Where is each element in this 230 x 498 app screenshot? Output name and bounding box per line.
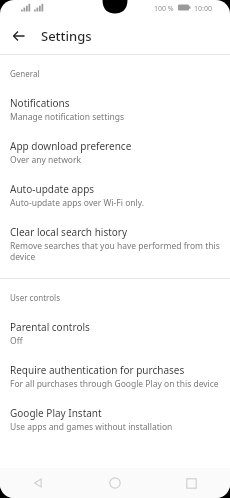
- staticText: Require authentication for purchases: [10, 363, 185, 377]
- button[interactable]: Google Play Instant: [0, 400, 230, 443]
- staticText: User controls: [10, 292, 60, 303]
- staticText: Remove searches that you have performed …: [10, 240, 220, 262]
- staticText: Auto-update apps: [10, 182, 95, 196]
- staticText: 10:00: [194, 4, 212, 14]
- button[interactable]: Back: [8, 25, 30, 47]
- staticText: Manage notification settings: [10, 111, 124, 123]
- button[interactable]: Clear local search history: [0, 219, 230, 272]
- staticText: App download preference: [10, 139, 132, 153]
- button[interactable]: Back: [0, 468, 76, 498]
- staticText: Off: [10, 335, 23, 347]
- button[interactable]: Auto-update apps: [0, 176, 230, 219]
- staticText: Use apps and games without installation: [10, 421, 173, 433]
- button[interactable]: Notifications: [0, 90, 230, 133]
- button[interactable]: App download preference: [0, 133, 230, 176]
- staticText: Parental controls: [10, 320, 90, 334]
- staticText: Notifications: [10, 96, 70, 110]
- staticText: For all purchases through Google Play on…: [10, 378, 219, 390]
- button[interactable]: Parental controls: [0, 314, 230, 357]
- button[interactable]: Require authentication for purchases: [0, 357, 230, 400]
- staticText: Clear local search history: [10, 225, 128, 239]
- staticText: General: [10, 68, 40, 79]
- staticText: Auto-update apps over Wi-Fi only.: [10, 197, 145, 209]
- staticText: Over any network: [10, 154, 82, 166]
- staticText: Settings: [41, 27, 92, 45]
- staticText: 100 %: [154, 4, 174, 14]
- button[interactable]: Home: [76, 468, 153, 498]
- button[interactable]: Recent apps: [153, 468, 230, 498]
- staticText: Google Play Instant: [10, 406, 102, 420]
